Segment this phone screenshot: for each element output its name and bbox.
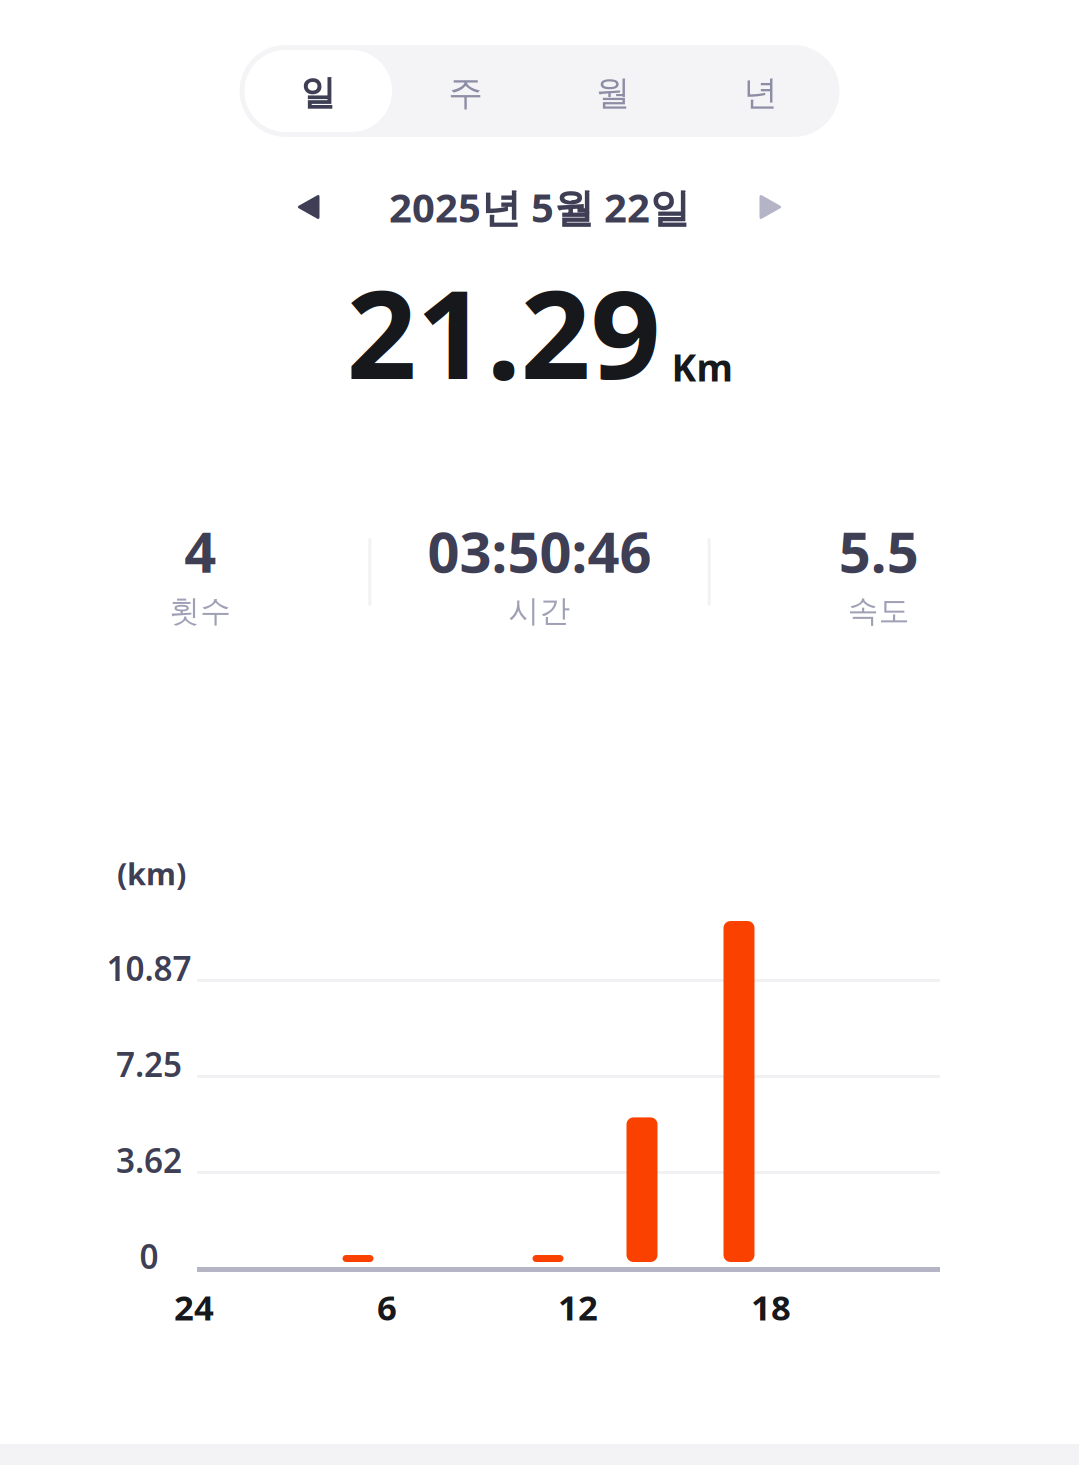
staticText: 12: [558, 1284, 598, 1330]
staticText: 시간: [508, 592, 570, 630]
staticText: 5.5: [839, 514, 919, 588]
staticText: 0: [139, 1234, 158, 1278]
button[interactable]: Next day: [759, 171, 859, 243]
staticText: 21.29: [346, 250, 660, 413]
staticText: Km: [671, 342, 732, 392]
staticText: 3.62: [116, 1138, 182, 1182]
button[interactable]: 일: [244, 50, 392, 132]
button[interactable]: 주: [392, 50, 539, 132]
staticText: 7.25: [116, 1042, 182, 1086]
staticText: 2025년 5월 22일: [389, 180, 690, 233]
button[interactable]: 월: [539, 50, 687, 132]
staticText: 년: [743, 72, 778, 114]
staticText: 03:50:46: [427, 514, 651, 588]
staticText: 주: [448, 72, 483, 114]
button[interactable]: Previous day: [219, 171, 319, 243]
staticText: 4: [184, 514, 216, 588]
button[interactable]: 년: [687, 50, 834, 132]
staticText: 횟수: [169, 592, 231, 630]
staticText: (km): [117, 853, 186, 894]
staticText: 18: [751, 1284, 791, 1330]
staticText: 속도: [848, 592, 910, 630]
staticText: 10.87: [106, 946, 191, 990]
staticText: 일: [301, 72, 336, 114]
staticText: 6: [377, 1284, 397, 1330]
staticText: 24: [174, 1284, 214, 1330]
staticText: 월: [596, 72, 631, 114]
